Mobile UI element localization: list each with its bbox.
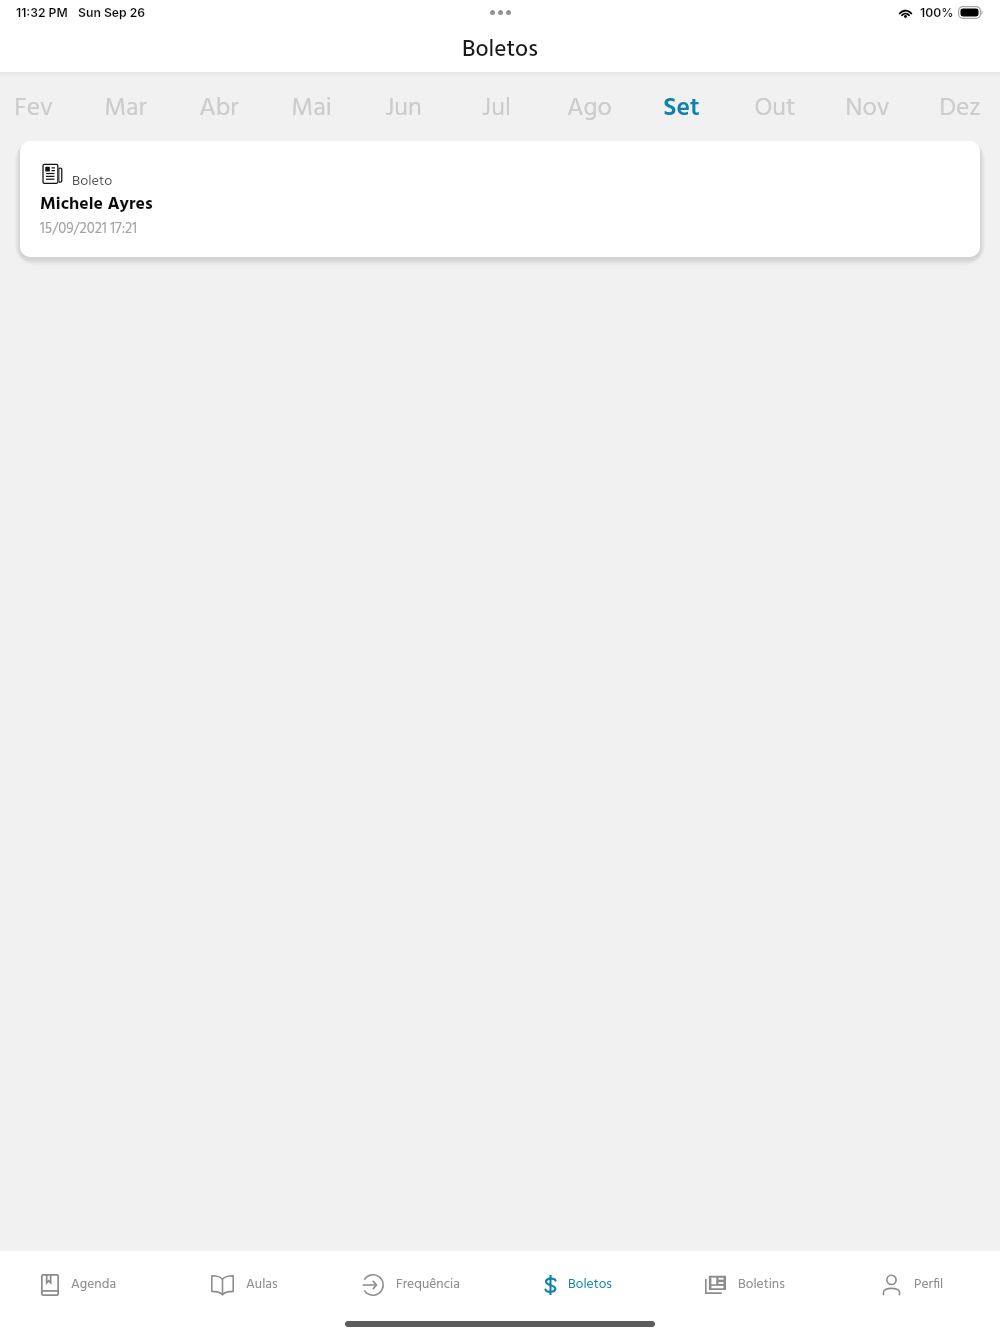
staticText: Sun Sep 26 [78, 5, 146, 20]
button[interactable]: Jul [450, 75, 543, 141]
staticText: Jul [482, 88, 511, 129]
staticText: Aulas [246, 1274, 278, 1296]
button[interactable]: Perfil [833, 1251, 1000, 1318]
staticText: Boletos [568, 1274, 612, 1296]
staticText: Ago [567, 88, 612, 129]
staticText: Michele Ayres [40, 190, 153, 218]
button[interactable]: Nov [821, 75, 914, 141]
staticText: Dez [939, 88, 981, 129]
button[interactable]: Agenda [0, 1251, 166, 1318]
staticText: Nov [845, 88, 890, 129]
staticText: Frequência [396, 1274, 460, 1296]
button[interactable]: Boletins [666, 1251, 833, 1318]
staticText: Boletos [462, 32, 538, 69]
staticText: Out [754, 88, 796, 129]
button[interactable]: Fev [0, 75, 80, 141]
staticText: Boletins [738, 1274, 785, 1296]
staticText: Perfil [914, 1274, 944, 1296]
staticText: 11:32 PM [16, 5, 68, 20]
staticText: Fev [14, 88, 53, 129]
staticText: Boleto [72, 170, 113, 193]
staticText: 15/09/2021 17:21 [40, 217, 138, 241]
staticText: Agenda [71, 1274, 117, 1296]
button[interactable]: Jun [357, 75, 450, 141]
button[interactable]: Aulas [166, 1251, 332, 1318]
button[interactable]: Ago [543, 75, 636, 141]
button[interactable]: Set [635, 75, 728, 141]
button[interactable]: Boleto [20, 141, 980, 257]
staticText: Mai [291, 88, 332, 129]
button[interactable]: Out [728, 75, 821, 141]
staticText: Abr [199, 88, 239, 129]
button[interactable]: Boletos [499, 1251, 666, 1318]
staticText: 100% [920, 5, 954, 20]
button[interactable]: Frequência [332, 1251, 499, 1318]
button[interactable]: Abr [172, 75, 265, 141]
button[interactable]: Dez [913, 75, 1000, 141]
staticText: Mar [104, 88, 147, 129]
staticText: Set [663, 88, 700, 129]
button[interactable]: Mar [79, 75, 172, 141]
staticText: Jun [385, 88, 422, 129]
button[interactable]: Mai [265, 75, 358, 141]
